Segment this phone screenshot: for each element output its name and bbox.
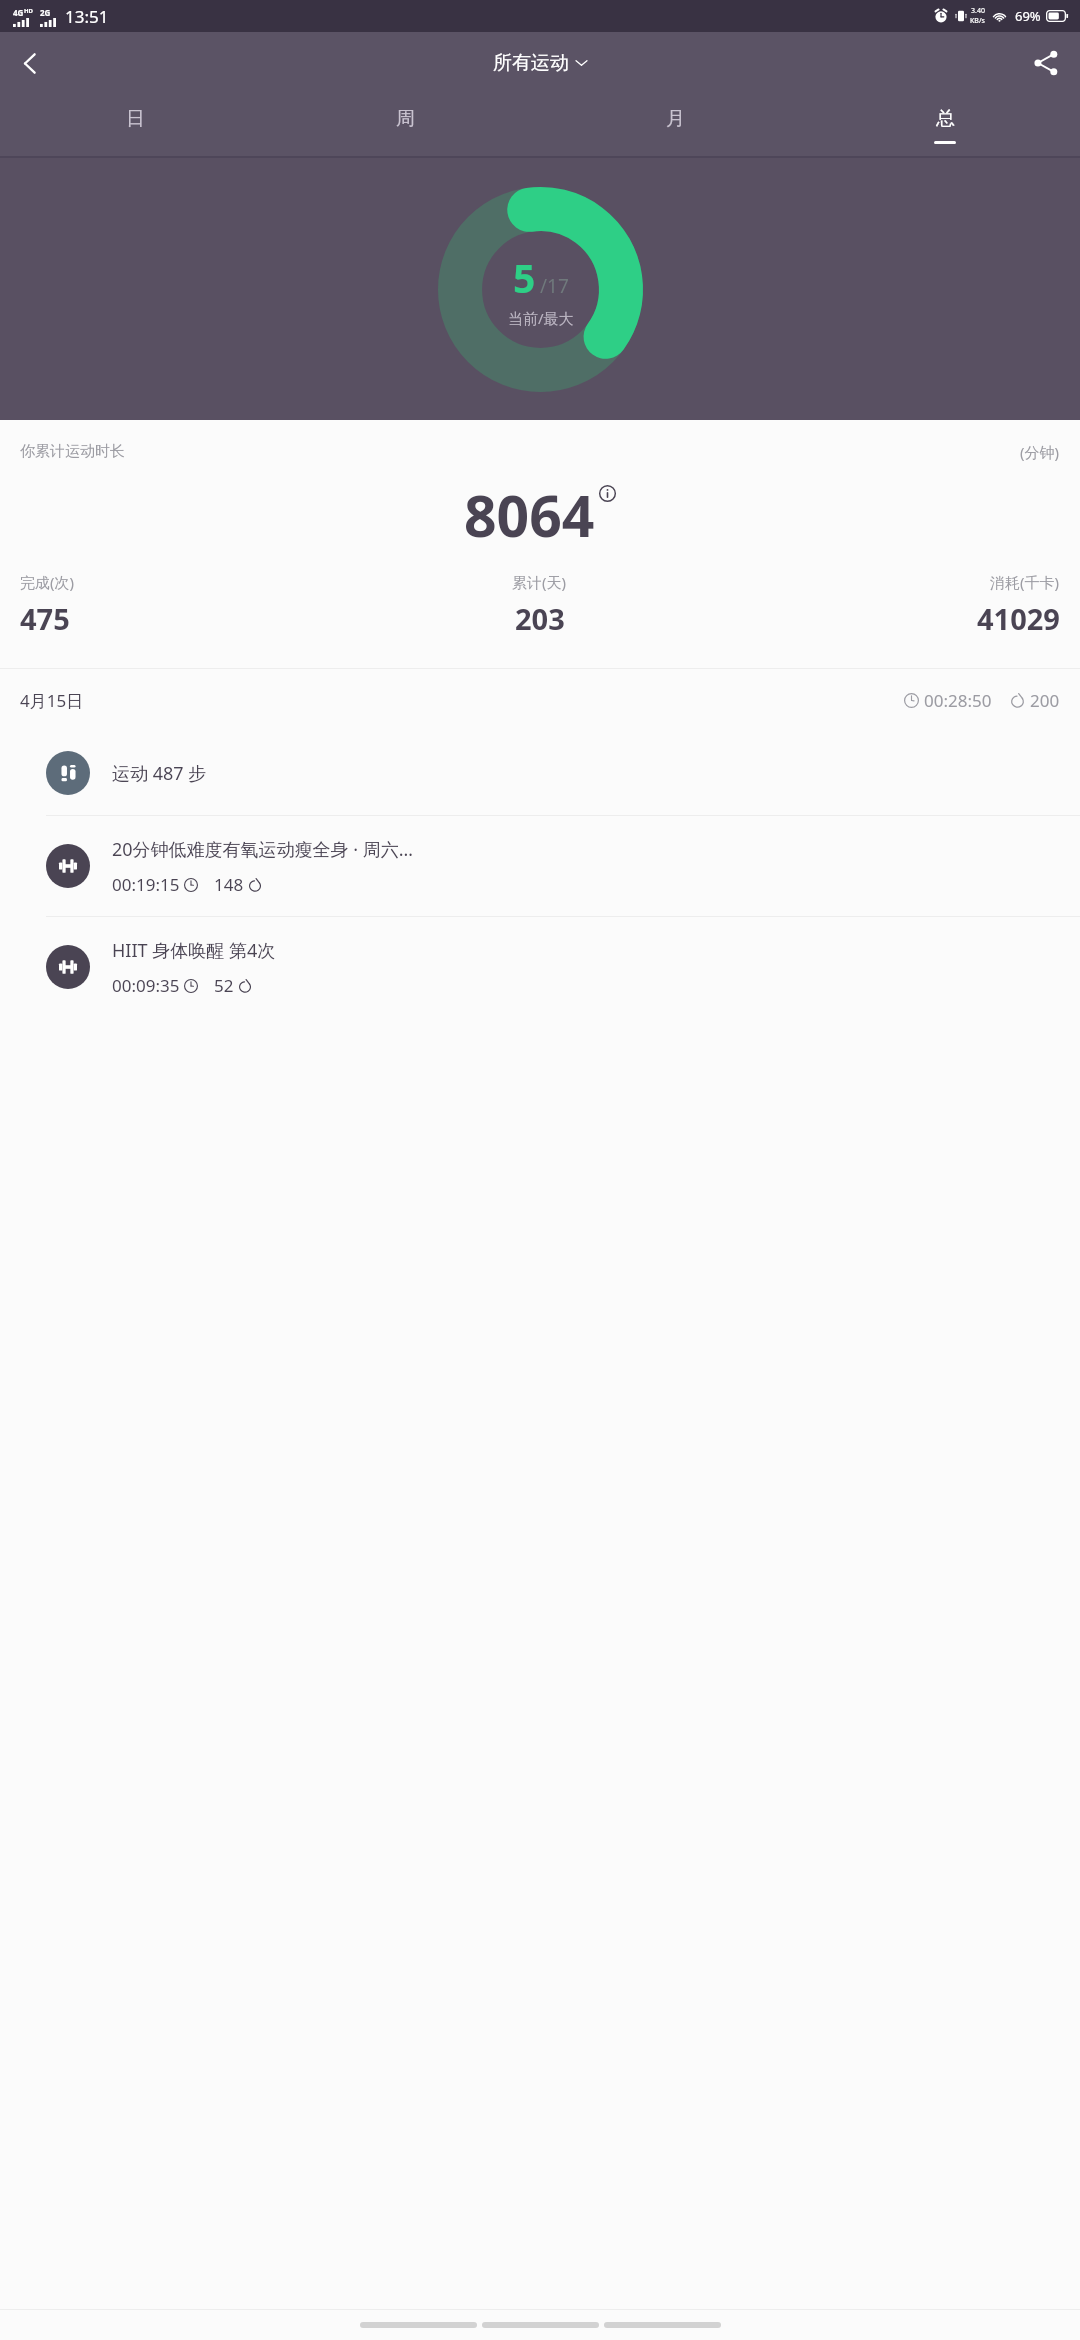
- staticText: 日: [126, 107, 145, 131]
- button[interactable]: 总: [810, 94, 1080, 156]
- staticText: 13:51: [65, 5, 109, 28]
- staticText: HIIT 身体唤醒 第4次: [112, 938, 276, 963]
- staticText: 4月15日: [20, 689, 84, 712]
- staticText: (分钟): [1020, 442, 1060, 462]
- staticText: 周: [396, 107, 415, 131]
- staticText: 00:09:35: [112, 974, 180, 997]
- staticText: 52: [214, 974, 234, 997]
- button[interactable]: 周: [270, 94, 540, 156]
- button[interactable]: 运动 487 步: [0, 731, 1080, 815]
- staticText: 00:28:50: [924, 689, 992, 712]
- staticText: 所有运动: [493, 51, 569, 75]
- staticText: 69%: [1015, 7, 1041, 25]
- staticText: 5: [513, 251, 536, 304]
- staticText: 完成(次): [20, 572, 75, 592]
- staticText: 4G: [13, 7, 24, 18]
- staticText: 运动 487 步: [112, 761, 207, 786]
- staticText: 消耗(千卡): [990, 572, 1060, 592]
- staticText: 总: [936, 107, 955, 131]
- button[interactable]: 所有运动: [487, 45, 594, 81]
- staticText: 3.40: [971, 6, 985, 16]
- staticText: /17: [540, 273, 569, 299]
- button[interactable]: Share: [1021, 38, 1071, 88]
- staticText: 你累计运动时长: [20, 442, 125, 461]
- staticText: KB/s: [970, 16, 985, 26]
- button[interactable]: HIIT 身体唤醒 第4次: [0, 917, 1080, 1017]
- staticText: 月: [666, 107, 685, 131]
- button[interactable]: 日: [0, 94, 270, 156]
- button[interactable]: 月: [540, 94, 810, 156]
- staticText: HD: [24, 7, 33, 15]
- staticText: 41029: [977, 599, 1060, 638]
- button[interactable]: 20分钟低难度有氧运动瘦全身 · 周六…: [0, 816, 1080, 916]
- staticText: 00:19:15: [112, 873, 180, 896]
- staticText: 200: [1030, 689, 1060, 712]
- button[interactable]: Back: [4, 37, 56, 89]
- staticText: 当前/最大: [508, 308, 574, 328]
- staticText: 148: [214, 873, 244, 896]
- staticText: 20分钟低难度有氧运动瘦全身 · 周六…: [112, 837, 414, 862]
- button[interactable]: Info: [599, 485, 616, 502]
- staticText: 203: [515, 599, 565, 638]
- staticText: 475: [20, 599, 70, 638]
- staticText: 累计(天): [512, 572, 567, 592]
- staticText: 8064: [464, 476, 595, 554]
- staticText: 2G: [40, 7, 51, 18]
